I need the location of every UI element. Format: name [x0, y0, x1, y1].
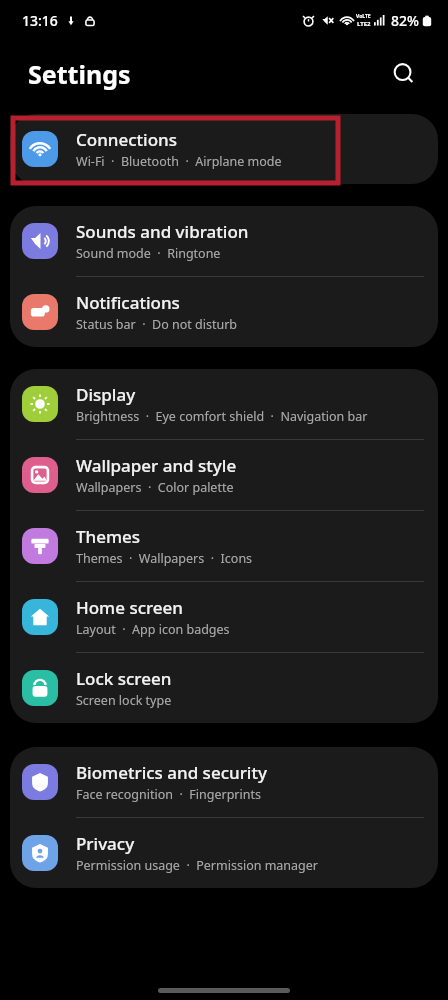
staticText: Wi-Fi · Bluetooth · Airplane mode — [76, 153, 282, 170]
button[interactable]: Notifications — [10, 277, 438, 347]
staticText: Connections — [76, 128, 178, 151]
staticText: Home screen — [76, 596, 184, 619]
staticText: Lock screen — [76, 667, 172, 690]
staticText: Settings — [28, 57, 131, 91]
staticText: Privacy — [76, 832, 135, 855]
button[interactable]: Lock screen — [10, 653, 438, 723]
staticText: Themes — [76, 525, 141, 548]
staticText: Face recognition · Fingerprints — [76, 786, 261, 803]
staticText: LTE2 — [357, 20, 371, 28]
button[interactable]: Themes — [10, 511, 438, 581]
staticText: Status bar · Do not disturb — [76, 316, 238, 333]
staticText: Notifications — [76, 291, 180, 314]
button[interactable]: Sounds and vibration — [10, 206, 438, 276]
button[interactable]: Home screen — [10, 582, 438, 652]
staticText: Sound mode · Ringtone — [76, 245, 221, 262]
staticText: Wallpaper and style — [76, 454, 237, 477]
staticText: Layout · App icon badges — [76, 621, 230, 638]
button[interactable]: Biometrics and security — [10, 747, 438, 817]
staticText: Themes · Wallpapers · Icons — [76, 550, 253, 567]
button[interactable]: Privacy — [10, 818, 438, 888]
staticText: Screen lock type — [76, 692, 172, 709]
staticText: 82% — [391, 11, 419, 30]
button[interactable]: Search — [382, 52, 426, 96]
staticText: Wallpapers · Color palette — [76, 479, 234, 496]
staticText: VoLTE — [356, 13, 371, 20]
staticText: Biometrics and security — [76, 761, 267, 784]
button[interactable]: Display — [10, 369, 438, 439]
staticText: Display — [76, 383, 136, 406]
staticText: Brightness · Eye comfort shield · Naviga… — [76, 408, 368, 425]
staticText: 13:16 — [22, 11, 58, 30]
button[interactable]: Wallpaper and style — [10, 440, 438, 510]
button[interactable]: Connections — [10, 114, 438, 184]
staticText: Sounds and vibration — [76, 220, 249, 243]
staticText: Permission usage · Permission manager — [76, 857, 319, 874]
